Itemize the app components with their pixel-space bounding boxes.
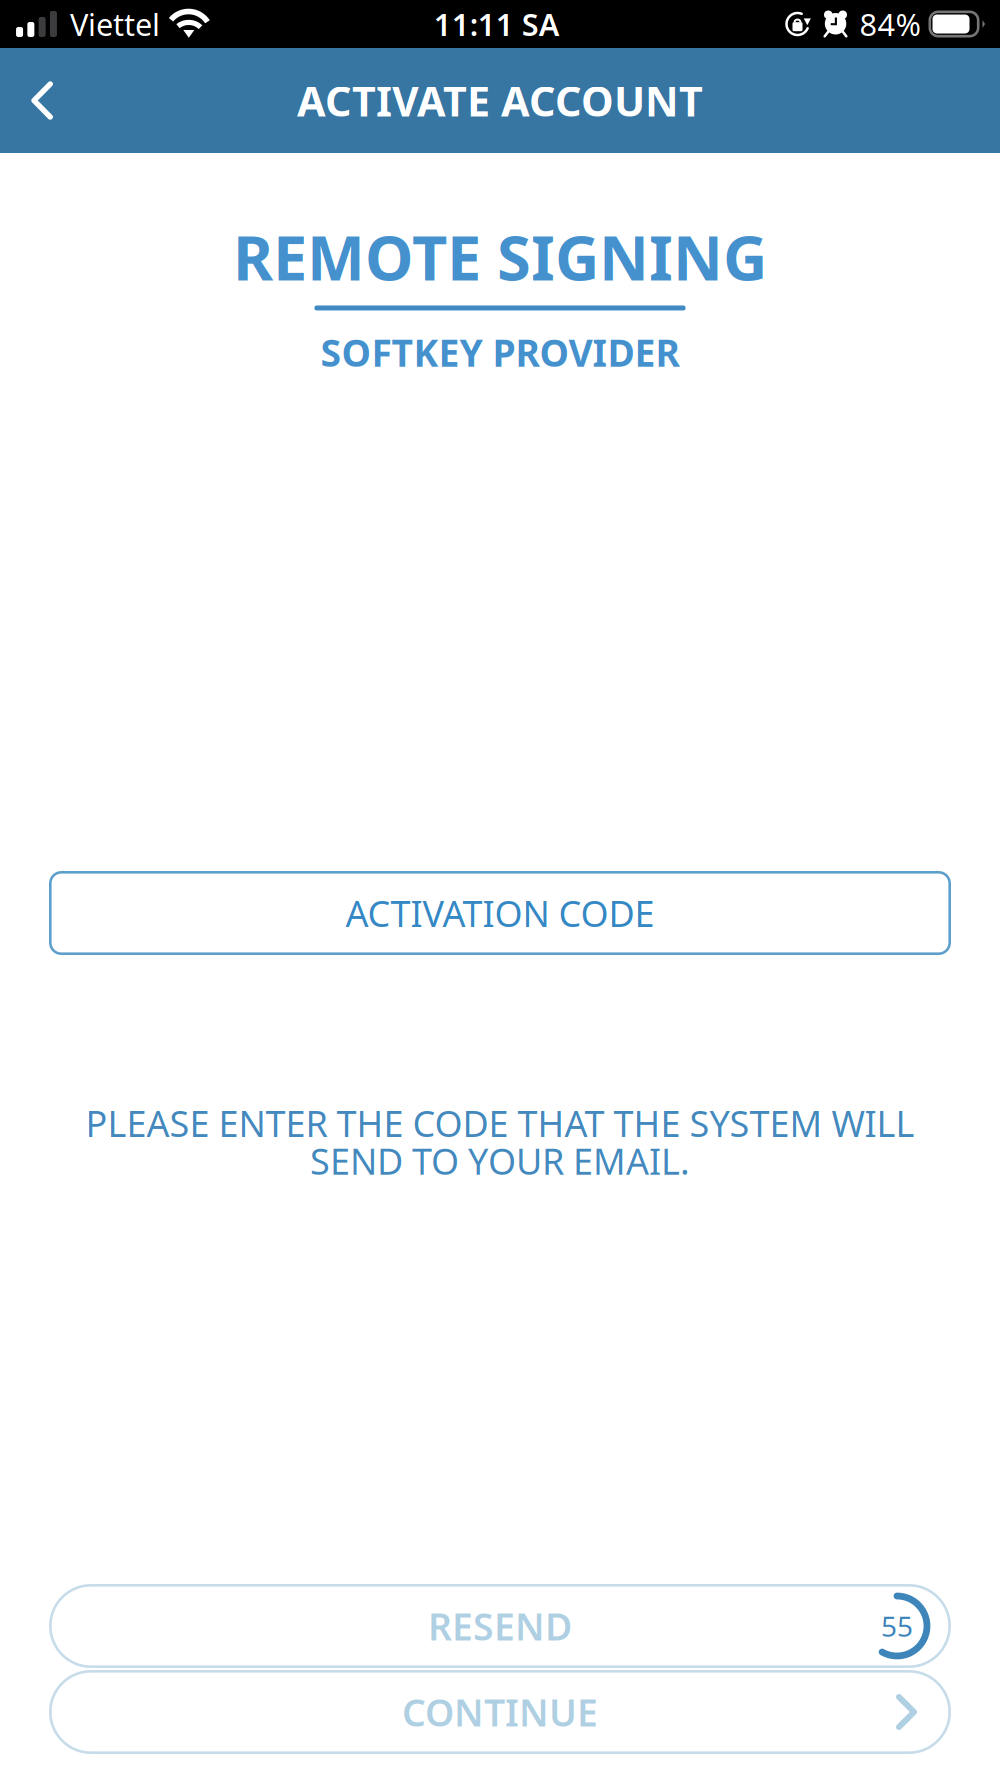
staticText: ACTIVATION CODE <box>345 889 654 937</box>
staticText: REMOTE SIGNING <box>233 216 767 297</box>
button[interactable]: ACTIVATION CODE <box>49 871 951 955</box>
staticText: SEND TO YOUR EMAIL. <box>310 1137 690 1185</box>
staticText: 55 <box>881 1607 913 1645</box>
staticText: 11:11 SA <box>434 4 560 44</box>
button[interactable]: RESEND <box>49 1584 951 1668</box>
staticText: Viettel <box>70 4 160 44</box>
button[interactable]: CONTINUE <box>49 1670 951 1754</box>
staticText: CONTINUE <box>402 1687 598 1737</box>
staticText: ACTIVATE ACCOUNT <box>297 73 703 128</box>
staticText: PLEASE ENTER THE CODE THAT THE SYSTEM WI… <box>85 1099 914 1147</box>
staticText: SOFTKEY PROVIDER <box>320 327 679 377</box>
button[interactable]: Back <box>0 59 79 142</box>
staticText: 84% <box>859 4 920 44</box>
staticText: RESEND <box>428 1601 572 1651</box>
